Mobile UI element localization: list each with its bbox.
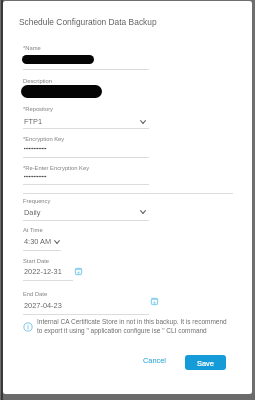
staticText: 2022-12-31: [24, 267, 62, 275]
staticText: *Name: [23, 45, 41, 51]
staticText: *Re-Enter Encryption Key: [23, 165, 90, 171]
staticText: End Date: [23, 291, 48, 297]
staticText: *Encryption Key: [23, 136, 65, 142]
button[interactable]: Select frequency: [140, 209, 146, 215]
staticText: 4:30 AM: [24, 237, 52, 245]
staticText: At Time: [23, 227, 43, 233]
staticText: 2027-04-23: [24, 301, 62, 309]
button[interactable]: Pick end date: [151, 298, 158, 305]
staticText: Frequency: [23, 198, 51, 204]
staticText: Start Date: [23, 258, 50, 264]
button[interactable]: Save: [185, 355, 226, 370]
staticText: Save: [197, 359, 214, 367]
staticText: *Repository: [23, 106, 53, 112]
staticText: Description: [23, 78, 52, 84]
staticText: Daily: [24, 208, 41, 216]
button[interactable]: Pick start date: [75, 268, 82, 275]
staticText: FTP1: [24, 117, 43, 125]
staticText: Internal CA Certificate Store in not in …: [37, 318, 227, 334]
staticText: Schedule Configuration Data Backup: [19, 17, 157, 26]
staticText: Cancel: [143, 356, 167, 364]
button[interactable]: Select repository: [140, 119, 146, 125]
button[interactable]: Cancel: [140, 353, 170, 367]
button[interactable]: Select time: [54, 239, 60, 245]
